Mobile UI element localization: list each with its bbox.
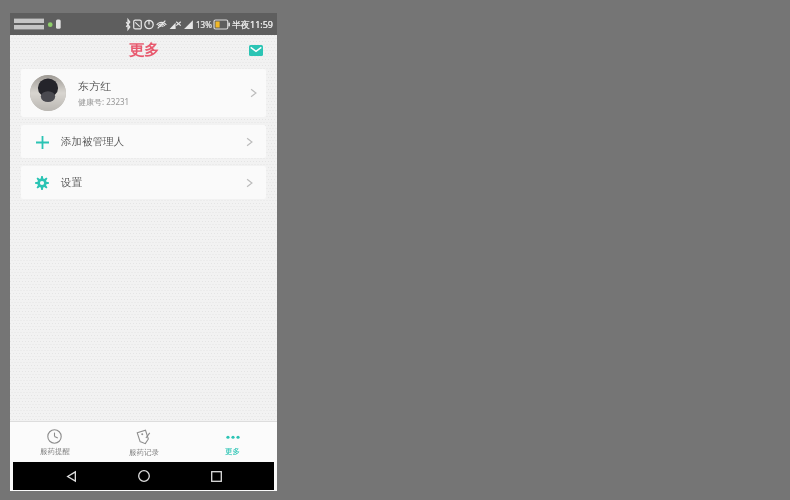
button[interactable]: 服药记录 [99,422,188,461]
button[interactable]: 添加被管理人 [21,125,266,158]
button[interactable]: Recents [201,462,231,490]
staticText: 13% [196,19,212,30]
staticText: 更多 [129,41,159,60]
staticText: 服药提醒 [40,447,70,456]
staticText: 服药记录 [129,448,159,457]
button[interactable]: Messages [247,41,265,59]
staticText: 添加被管理人 [61,135,124,148]
button[interactable]: 服药提醒 [10,422,99,461]
button[interactable]: 东方红 [21,69,266,117]
staticText: 健康号: 23231 [78,96,130,107]
button[interactable]: 设置 [21,166,266,199]
staticText: 设置 [61,176,82,189]
button[interactable]: 更多 [188,422,277,461]
staticText: 更多 [225,447,240,456]
button[interactable]: Back [56,462,86,490]
staticText: 半夜11:59 [232,18,274,30]
button[interactable]: Home [129,462,159,490]
staticText: 东方红 [78,79,111,93]
